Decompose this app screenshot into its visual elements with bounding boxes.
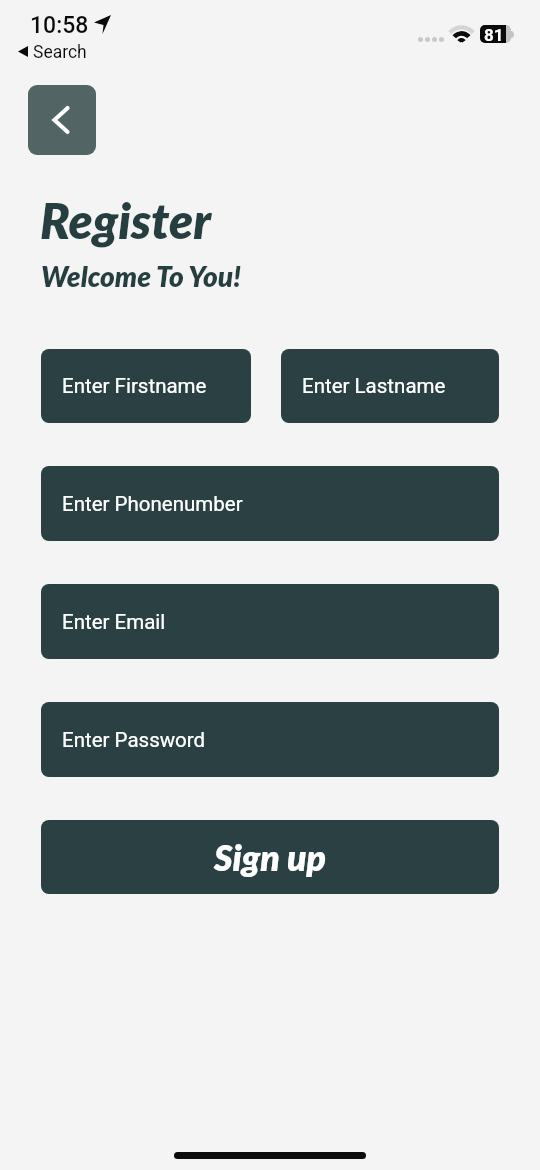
- staticText: Welcome To You!: [41, 259, 241, 293]
- staticText: Enter Password: [62, 728, 206, 752]
- staticText: 81: [484, 25, 504, 43]
- button[interactable]: Enter Phonenumber: [41, 466, 499, 541]
- button[interactable]: Enter Lastname: [281, 349, 499, 423]
- staticText: Enter Email: [62, 610, 166, 634]
- staticText: Enter Lastname: [302, 374, 446, 398]
- button[interactable]: Sign up: [41, 820, 499, 894]
- button[interactable]: Enter Email: [41, 584, 499, 659]
- staticText: Search: [33, 42, 87, 63]
- staticText: Enter Phonenumber: [62, 492, 243, 516]
- staticText: Enter Firstname: [62, 374, 207, 398]
- button[interactable]: Back: [28, 85, 96, 155]
- button[interactable]: Enter Password: [41, 702, 499, 777]
- button[interactable]: Enter Firstname: [41, 349, 251, 423]
- staticText: Register: [40, 191, 211, 250]
- staticText: 10:58: [30, 12, 89, 39]
- staticText: Sign up: [214, 836, 327, 879]
